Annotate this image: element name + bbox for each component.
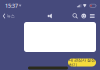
staticText: 뉴스 (7, 13, 15, 18)
button[interactable]: 내 관심사 설정하기 (68, 58, 96, 66)
staticText: 내 관심사 설정하기 (69, 58, 95, 67)
button[interactable]: Announcements (47, 11, 53, 20)
button[interactable]: 뉴스 (3, 11, 15, 20)
button[interactable]: Menu (88, 11, 96, 20)
button[interactable]: Search (71, 11, 79, 20)
staticText: 15:37 (5, 2, 18, 9)
button[interactable]: Profile (79, 11, 88, 20)
